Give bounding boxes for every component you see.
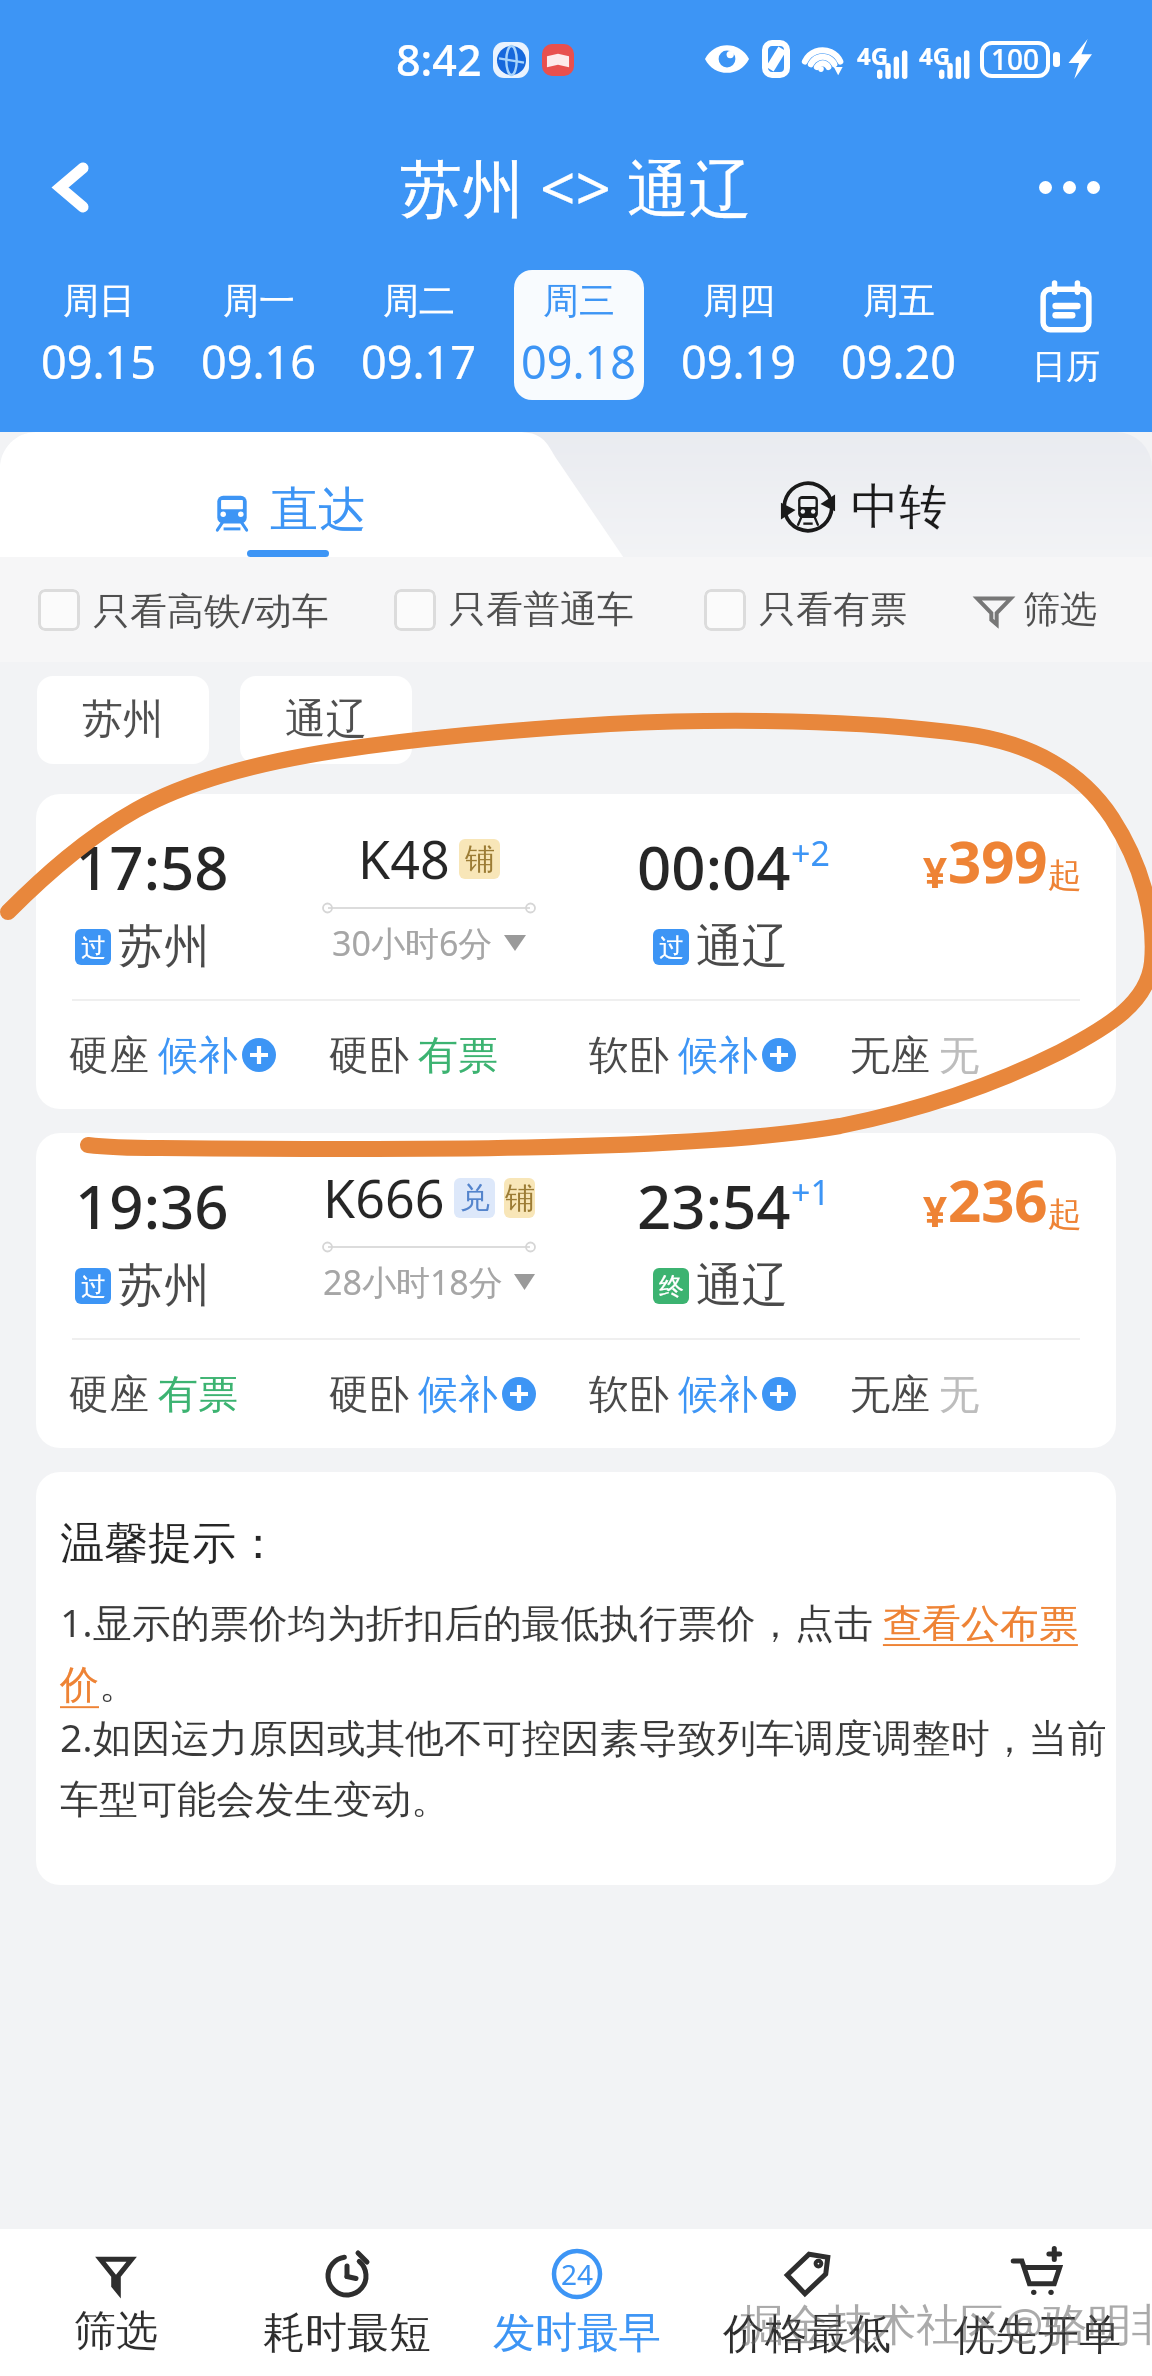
button[interactable]: 周一 — [194, 270, 324, 400]
staticText: 温馨提示： — [60, 1516, 280, 1571]
staticText: 09.18 — [521, 331, 637, 392]
staticText: 铺 — [505, 1179, 535, 1217]
staticText: 17:58 — [75, 826, 229, 908]
button[interactable]: 24 — [462, 2229, 692, 2376]
button[interactable]: 筛选 — [0, 2229, 231, 2376]
staticText: 00:04 — [637, 826, 791, 908]
staticText: 软卧 — [589, 1030, 669, 1080]
button[interactable]: 周三 — [514, 270, 644, 400]
staticText: 耗时最短 — [263, 2307, 431, 2360]
staticText: 4G — [919, 39, 951, 72]
staticText: 过 — [659, 932, 684, 963]
staticText: 筛选 — [74, 2305, 158, 2358]
staticText: 候补 — [678, 1030, 758, 1080]
staticText: 软卧 — [589, 1369, 669, 1419]
staticText: 有票 — [418, 1030, 498, 1080]
staticText: 苏州 — [118, 918, 210, 976]
staticText: 无 — [939, 1030, 979, 1080]
staticText: 优先开单 — [953, 2309, 1121, 2362]
button[interactable]: 中转 — [576, 432, 1152, 557]
staticText: 直达 — [270, 480, 366, 540]
staticText: 399 — [948, 821, 1048, 900]
staticText: 苏州 <> 通辽 — [400, 145, 752, 230]
staticText: K48 — [358, 823, 450, 894]
staticText: 周二 — [383, 278, 455, 323]
staticText: 通辽 — [696, 1257, 788, 1315]
button[interactable]: 优先开单 — [922, 2229, 1152, 2376]
staticText: +1 — [791, 1169, 830, 1215]
button[interactable]: 耗时最短 — [231, 2229, 462, 2376]
staticText: ¥ — [923, 1182, 948, 1239]
button[interactable]: 通辽 — [240, 676, 412, 764]
staticText: 无 — [939, 1369, 979, 1419]
staticText: 通辽 — [285, 694, 367, 746]
staticText: 09.19 — [681, 331, 797, 392]
button[interactable]: 日历 — [979, 260, 1152, 410]
staticText: 30小时6分 — [332, 920, 493, 966]
staticText: 铺 — [465, 840, 495, 878]
button[interactable]: 周日 — [34, 270, 164, 400]
staticText: 有票 — [158, 1369, 238, 1419]
staticText: K666 — [323, 1162, 445, 1233]
button[interactable]: More options — [1014, 132, 1124, 242]
staticText: 19:36 — [75, 1165, 229, 1247]
staticText: 硬座 — [69, 1030, 149, 1080]
button[interactable]: 只看有票 — [704, 586, 907, 633]
staticText: 周四 — [703, 278, 775, 323]
button[interactable]: 价格最低 — [692, 2229, 922, 2376]
button[interactable]: 直达 — [0, 432, 576, 557]
button[interactable]: 周五 — [834, 270, 964, 400]
staticText: 09.16 — [201, 331, 317, 392]
staticText: 只看有票 — [759, 586, 907, 633]
staticText: 起 — [1048, 1193, 1082, 1236]
staticText: 发时最早 — [493, 2307, 661, 2360]
staticText: 终 — [659, 1271, 684, 1302]
staticText: 09.20 — [841, 331, 957, 392]
staticText: 无座 — [850, 1030, 930, 1080]
button[interactable]: Back — [21, 137, 121, 237]
staticText: 周五 — [863, 278, 935, 323]
staticText: 候补 — [158, 1030, 238, 1080]
staticText: 09.15 — [41, 331, 157, 392]
staticText: 23:54 — [637, 1165, 791, 1247]
staticText: 价格最低 — [723, 2308, 891, 2361]
staticText: 2.如因运力原因或其他不可控因素导致列车调度调整时，当前车型可能会发生变动。 — [60, 1710, 1110, 1825]
staticText: 苏州 — [118, 1257, 210, 1315]
staticText: 100 — [991, 40, 1040, 78]
button[interactable]: 只看普通车 — [394, 586, 634, 633]
button[interactable]: 17:58 — [36, 794, 1116, 1109]
staticText: 4G — [857, 39, 889, 72]
button[interactable]: 19:36 — [36, 1133, 1116, 1448]
staticText: 只看普通车 — [449, 586, 634, 633]
staticText: 过 — [81, 932, 106, 963]
button[interactable]: 只看高铁/动车 — [38, 584, 329, 635]
staticText: 中转 — [851, 477, 947, 537]
staticText: 28小时18分 — [323, 1259, 503, 1305]
staticText: 通辽 — [696, 918, 788, 976]
staticText: 周日 — [63, 278, 135, 323]
staticText: 硬座 — [69, 1369, 149, 1419]
staticText: 筛选 — [1023, 586, 1097, 633]
staticText: 候补 — [678, 1369, 758, 1419]
staticText: 起 — [1048, 854, 1082, 897]
button[interactable]: 周二 — [354, 270, 484, 400]
staticText: 苏州 — [82, 694, 164, 746]
staticText: 日历 — [1032, 345, 1100, 388]
staticText: 09.17 — [361, 331, 477, 392]
staticText: 周一 — [223, 278, 295, 323]
staticText: ¥ — [923, 843, 948, 900]
staticText: 236 — [948, 1160, 1048, 1239]
staticText: 周三 — [543, 278, 615, 323]
staticText: 兑 — [460, 1179, 490, 1217]
staticText: 1.显示的票价均为折扣后的最低执行票价，点击 查看公布票价。 — [60, 1595, 1110, 1710]
staticText: 无座 — [850, 1369, 930, 1419]
staticText: 硬卧 — [329, 1369, 409, 1419]
button[interactable]: 筛选 — [975, 586, 1097, 633]
staticText: 只看高铁/动车 — [93, 584, 329, 635]
staticText: 8:42 — [396, 30, 482, 89]
staticText: 掘金技术社区@骆明非要了 — [740, 2293, 1152, 2353]
staticText: 24 — [561, 2255, 594, 2293]
button[interactable]: 周四 — [674, 270, 804, 400]
button[interactable]: 苏州 — [37, 676, 209, 764]
staticText: +2 — [791, 830, 830, 876]
